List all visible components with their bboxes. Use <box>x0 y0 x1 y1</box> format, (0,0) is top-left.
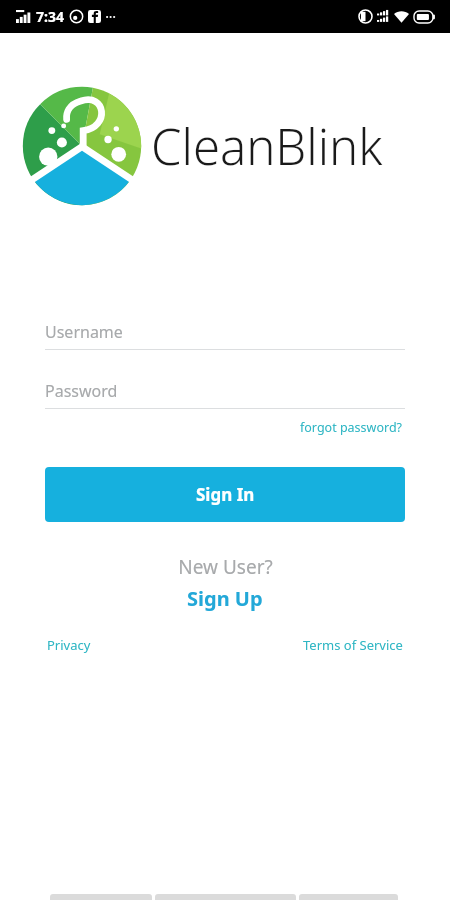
staticText: Privacy <box>47 636 91 654</box>
button[interactable]: forgot password? <box>298 417 405 438</box>
staticText: 7:34 <box>36 7 64 26</box>
button[interactable]: Terms of Service <box>301 633 405 657</box>
staticText: Password <box>45 380 118 402</box>
staticText: Sign In <box>196 483 255 506</box>
staticText: Username <box>45 321 123 343</box>
staticText: CleanBlink <box>151 113 383 180</box>
staticText: Sign Up <box>187 585 263 612</box>
button[interactable]: Username <box>45 321 405 350</box>
staticText: Terms of Service <box>303 636 403 654</box>
staticText: New User? <box>178 554 273 580</box>
button[interactable]: Password <box>45 380 405 409</box>
staticText: forgot password? <box>300 419 403 436</box>
button[interactable]: Sign Up <box>181 584 269 613</box>
button[interactable]: Privacy <box>45 633 93 657</box>
button[interactable]: Sign In <box>45 467 405 522</box>
